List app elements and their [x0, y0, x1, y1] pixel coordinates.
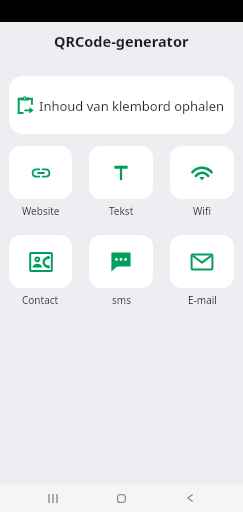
button[interactable]	[9, 146, 72, 199]
staticText: E-mail	[188, 293, 217, 307]
button[interactable]: Back	[136, 484, 243, 512]
staticText: Tekst	[109, 204, 134, 218]
button[interactable]	[170, 146, 234, 199]
button[interactable]: Home	[106, 484, 136, 512]
staticText: Inhoud van klembord ophalen	[39, 97, 225, 115]
button[interactable]	[89, 146, 153, 199]
button[interactable]	[89, 235, 153, 288]
button[interactable]	[170, 235, 234, 288]
staticText: Wifi	[193, 204, 211, 218]
staticText: Website	[22, 204, 60, 218]
button[interactable]: Recent apps	[0, 484, 106, 512]
staticText: QRCode-generator	[54, 31, 189, 51]
button[interactable]: Inhoud van klembord ophalen	[9, 76, 234, 134]
button[interactable]	[9, 235, 72, 288]
staticText: Contact	[22, 293, 59, 307]
staticText: sms	[112, 293, 131, 307]
